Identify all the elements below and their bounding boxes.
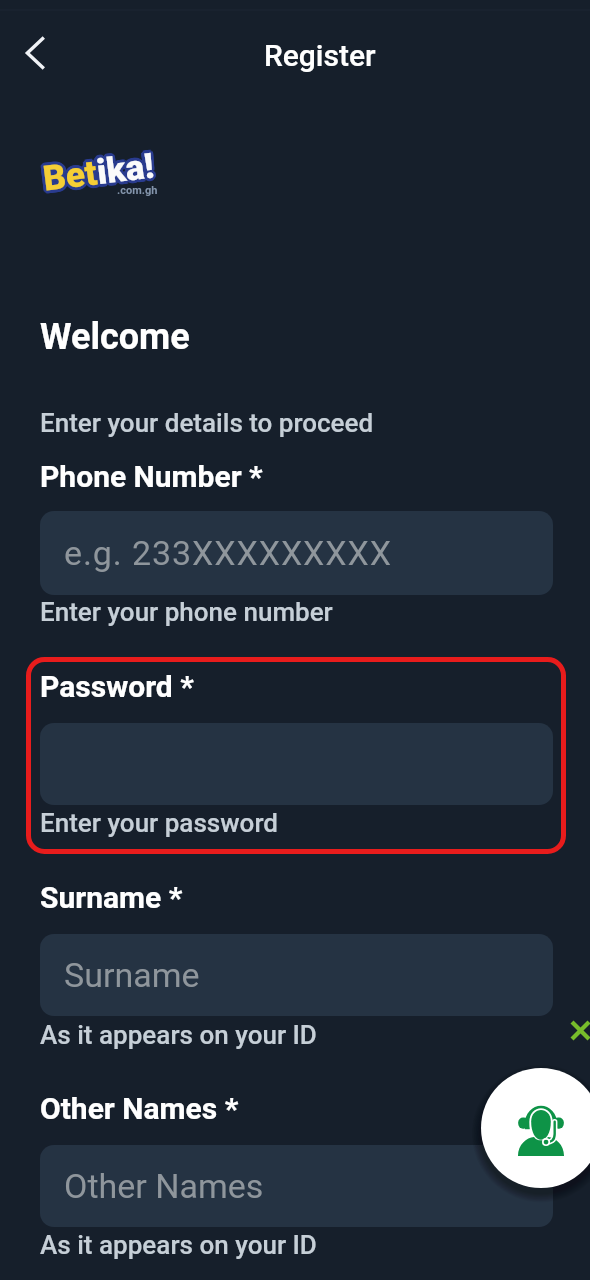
staticText: ika! [94,145,157,193]
staticText: e.g. 233XXXXXXXXX [64,533,392,573]
staticText: Betika! [40,148,155,203]
staticText: As it appears on your ID [40,1230,317,1260]
staticText: Betika! [38,147,153,201]
staticText: Betika! [44,145,159,199]
staticText: Betika! [42,148,157,202]
staticText: .com.gh [117,184,158,197]
button[interactable]: Customer support chat [481,1068,590,1188]
staticText: Betika! [41,142,157,197]
staticText: Other Names [64,1166,264,1206]
staticText: Betika! [44,146,159,200]
staticText: Enter your password [40,808,279,838]
staticText: Betika! [39,144,154,198]
button[interactable]: e.g. 233XXXXXXXXX [40,511,553,595]
staticText: Password * [40,669,194,704]
staticText: Surname * [40,880,183,915]
button[interactable]: Close chat [562,1012,590,1048]
button[interactable]: Surname [40,934,553,1016]
staticText: Betika! [40,143,155,197]
staticText: Betika! [41,142,156,197]
staticText: Phone Number * [40,459,263,494]
button[interactable]: Other Names [40,1145,553,1227]
staticText: Enter your details to proceed [40,408,374,438]
staticText: Betika! [39,148,154,202]
staticText: Welcome [40,316,190,358]
staticText: Betika! [43,147,158,201]
staticText: Betika! [43,143,158,197]
staticText: As it appears on your ID [40,1020,317,1050]
button[interactable]: Back [12,29,60,77]
staticText: Betika! [41,148,156,203]
staticText: Enter your phone number [40,597,333,627]
staticText: Bet [41,152,99,200]
staticText: Betika! [38,146,153,200]
staticText: Register [264,38,376,73]
staticText: Surname [64,955,200,995]
staticText: Betika! [44,144,159,198]
staticText: Betika! [38,145,153,199]
staticText: Other Names * [40,1091,239,1126]
